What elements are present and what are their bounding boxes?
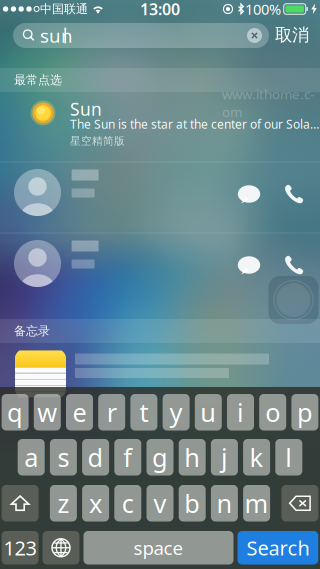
button[interactable]: t — [130, 394, 157, 430]
button[interactable]: j — [211, 439, 238, 475]
button[interactable]: i — [227, 394, 254, 430]
button[interactable]: v — [146, 485, 173, 521]
staticText: space — [133, 535, 183, 560]
button[interactable]: e — [66, 394, 93, 430]
button[interactable]: x — [82, 485, 109, 521]
button[interactable]: m — [243, 485, 270, 521]
staticText: m — [245, 486, 269, 520]
staticText: 13:00 — [140, 0, 180, 20]
staticText: y — [170, 395, 183, 429]
staticText: q — [7, 395, 23, 429]
staticText: 取消 — [275, 24, 309, 46]
button[interactable]: space — [83, 531, 233, 564]
button[interactable]: r — [98, 394, 125, 430]
staticText: Search — [246, 534, 309, 561]
button[interactable]: s — [50, 439, 77, 475]
button[interactable]: Next keyboard — [42, 531, 79, 564]
staticText: 最常点选 — [14, 73, 62, 87]
staticText: p — [297, 395, 313, 429]
staticText: 备忘录 — [14, 324, 50, 338]
staticText: l — [285, 440, 292, 474]
button[interactable]: c — [114, 485, 141, 521]
button[interactable]: Delete — [281, 485, 318, 521]
button[interactable]: h — [179, 439, 206, 475]
button[interactable]: Search — [237, 531, 318, 564]
staticText: h — [184, 440, 200, 474]
staticText: c — [122, 486, 134, 520]
button[interactable]: n — [211, 485, 238, 521]
button[interactable]: z — [50, 485, 77, 521]
staticText: b — [184, 486, 200, 520]
staticText: k — [250, 440, 264, 474]
button[interactable]: Shift — [2, 485, 39, 521]
button[interactable]: l — [275, 439, 302, 475]
staticText: v — [153, 486, 166, 520]
staticText: The Sun is the star at the center of our… — [70, 116, 319, 132]
staticText: j — [221, 440, 228, 474]
button[interactable]: f — [114, 439, 141, 475]
staticText: w — [37, 395, 57, 429]
button[interactable]: b — [179, 485, 206, 521]
staticText: d — [88, 440, 104, 474]
button[interactable] — [0, 92, 320, 162]
staticText: f — [123, 440, 132, 474]
staticText: sun — [40, 23, 73, 48]
staticText: Sun — [70, 97, 102, 120]
button[interactable]: q — [2, 394, 29, 430]
staticText: i — [237, 395, 244, 429]
staticText: u — [200, 395, 216, 429]
button[interactable]: a — [18, 439, 45, 475]
staticText: o — [265, 395, 280, 429]
staticText: 星空精简版 — [70, 134, 125, 147]
button[interactable]: d — [82, 439, 109, 475]
staticText: www.ithome.com — [222, 85, 314, 121]
button[interactable] — [0, 233, 320, 304]
button[interactable] — [0, 343, 320, 387]
staticText: 100% — [245, 0, 281, 19]
staticText: 123 — [4, 534, 37, 561]
button[interactable]: sun — [13, 23, 269, 48]
staticText: r — [107, 395, 117, 429]
staticText: g — [152, 440, 168, 474]
button[interactable]: p — [291, 394, 318, 430]
staticText: x — [89, 486, 102, 520]
staticText: n — [216, 486, 232, 520]
button[interactable]: u — [195, 394, 222, 430]
button[interactable]: y — [163, 394, 190, 430]
staticText: s — [57, 440, 69, 474]
staticText: 中国联通 — [40, 2, 88, 16]
button[interactable]: 123 — [2, 531, 39, 564]
button[interactable] — [0, 162, 320, 233]
button[interactable]: w — [34, 394, 61, 430]
button[interactable]: 取消 — [275, 24, 309, 46]
button[interactable]: k — [243, 439, 270, 475]
button[interactable]: g — [146, 439, 173, 475]
staticText: a — [24, 440, 38, 474]
staticText: e — [72, 395, 86, 429]
staticText: t — [139, 395, 148, 429]
button[interactable]: o — [259, 394, 286, 430]
staticText: z — [57, 486, 69, 520]
